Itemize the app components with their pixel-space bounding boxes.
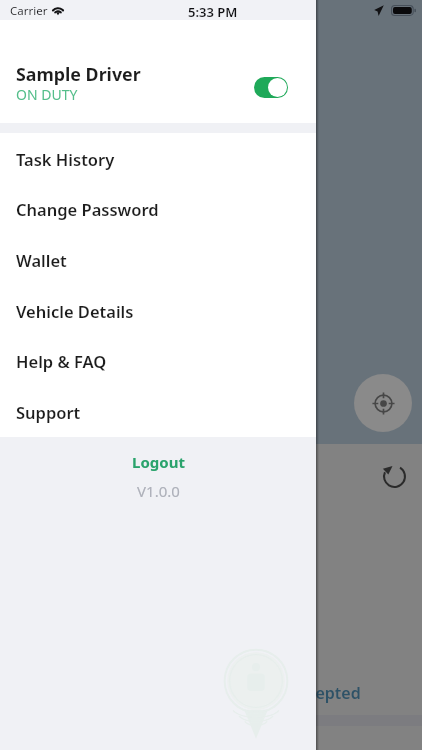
button[interactable]: Vehicle Details bbox=[0, 286, 316, 336]
staticText: Support bbox=[16, 401, 81, 423]
staticText: Vehicle Details bbox=[16, 300, 134, 322]
button[interactable]: Logout bbox=[0, 448, 316, 476]
staticText: Wallet bbox=[16, 249, 67, 271]
staticText: 5:33 PM bbox=[188, 3, 238, 21]
staticText: Task History bbox=[16, 148, 115, 170]
button[interactable]: Wallet bbox=[0, 235, 316, 285]
staticText: V1.0.0 bbox=[137, 481, 180, 501]
button[interactable]: Support bbox=[0, 387, 316, 437]
staticText: Carrier bbox=[10, 3, 48, 19]
staticText: Task Accepted bbox=[250, 682, 361, 704]
button[interactable]: My location bbox=[354, 374, 412, 432]
staticText: Sample Driver bbox=[16, 62, 141, 86]
staticText: Logout bbox=[132, 452, 185, 472]
button[interactable]: Duty toggle bbox=[254, 77, 288, 98]
button[interactable]: Task History bbox=[0, 134, 316, 184]
staticText: Help & FAQ bbox=[16, 350, 107, 372]
staticText: Change Password bbox=[16, 198, 159, 220]
button[interactable]: Help & FAQ bbox=[0, 336, 316, 386]
staticText: ON DUTY bbox=[16, 85, 78, 104]
button[interactable]: Refresh bbox=[381, 463, 408, 490]
button[interactable]: Change Password bbox=[0, 184, 316, 234]
